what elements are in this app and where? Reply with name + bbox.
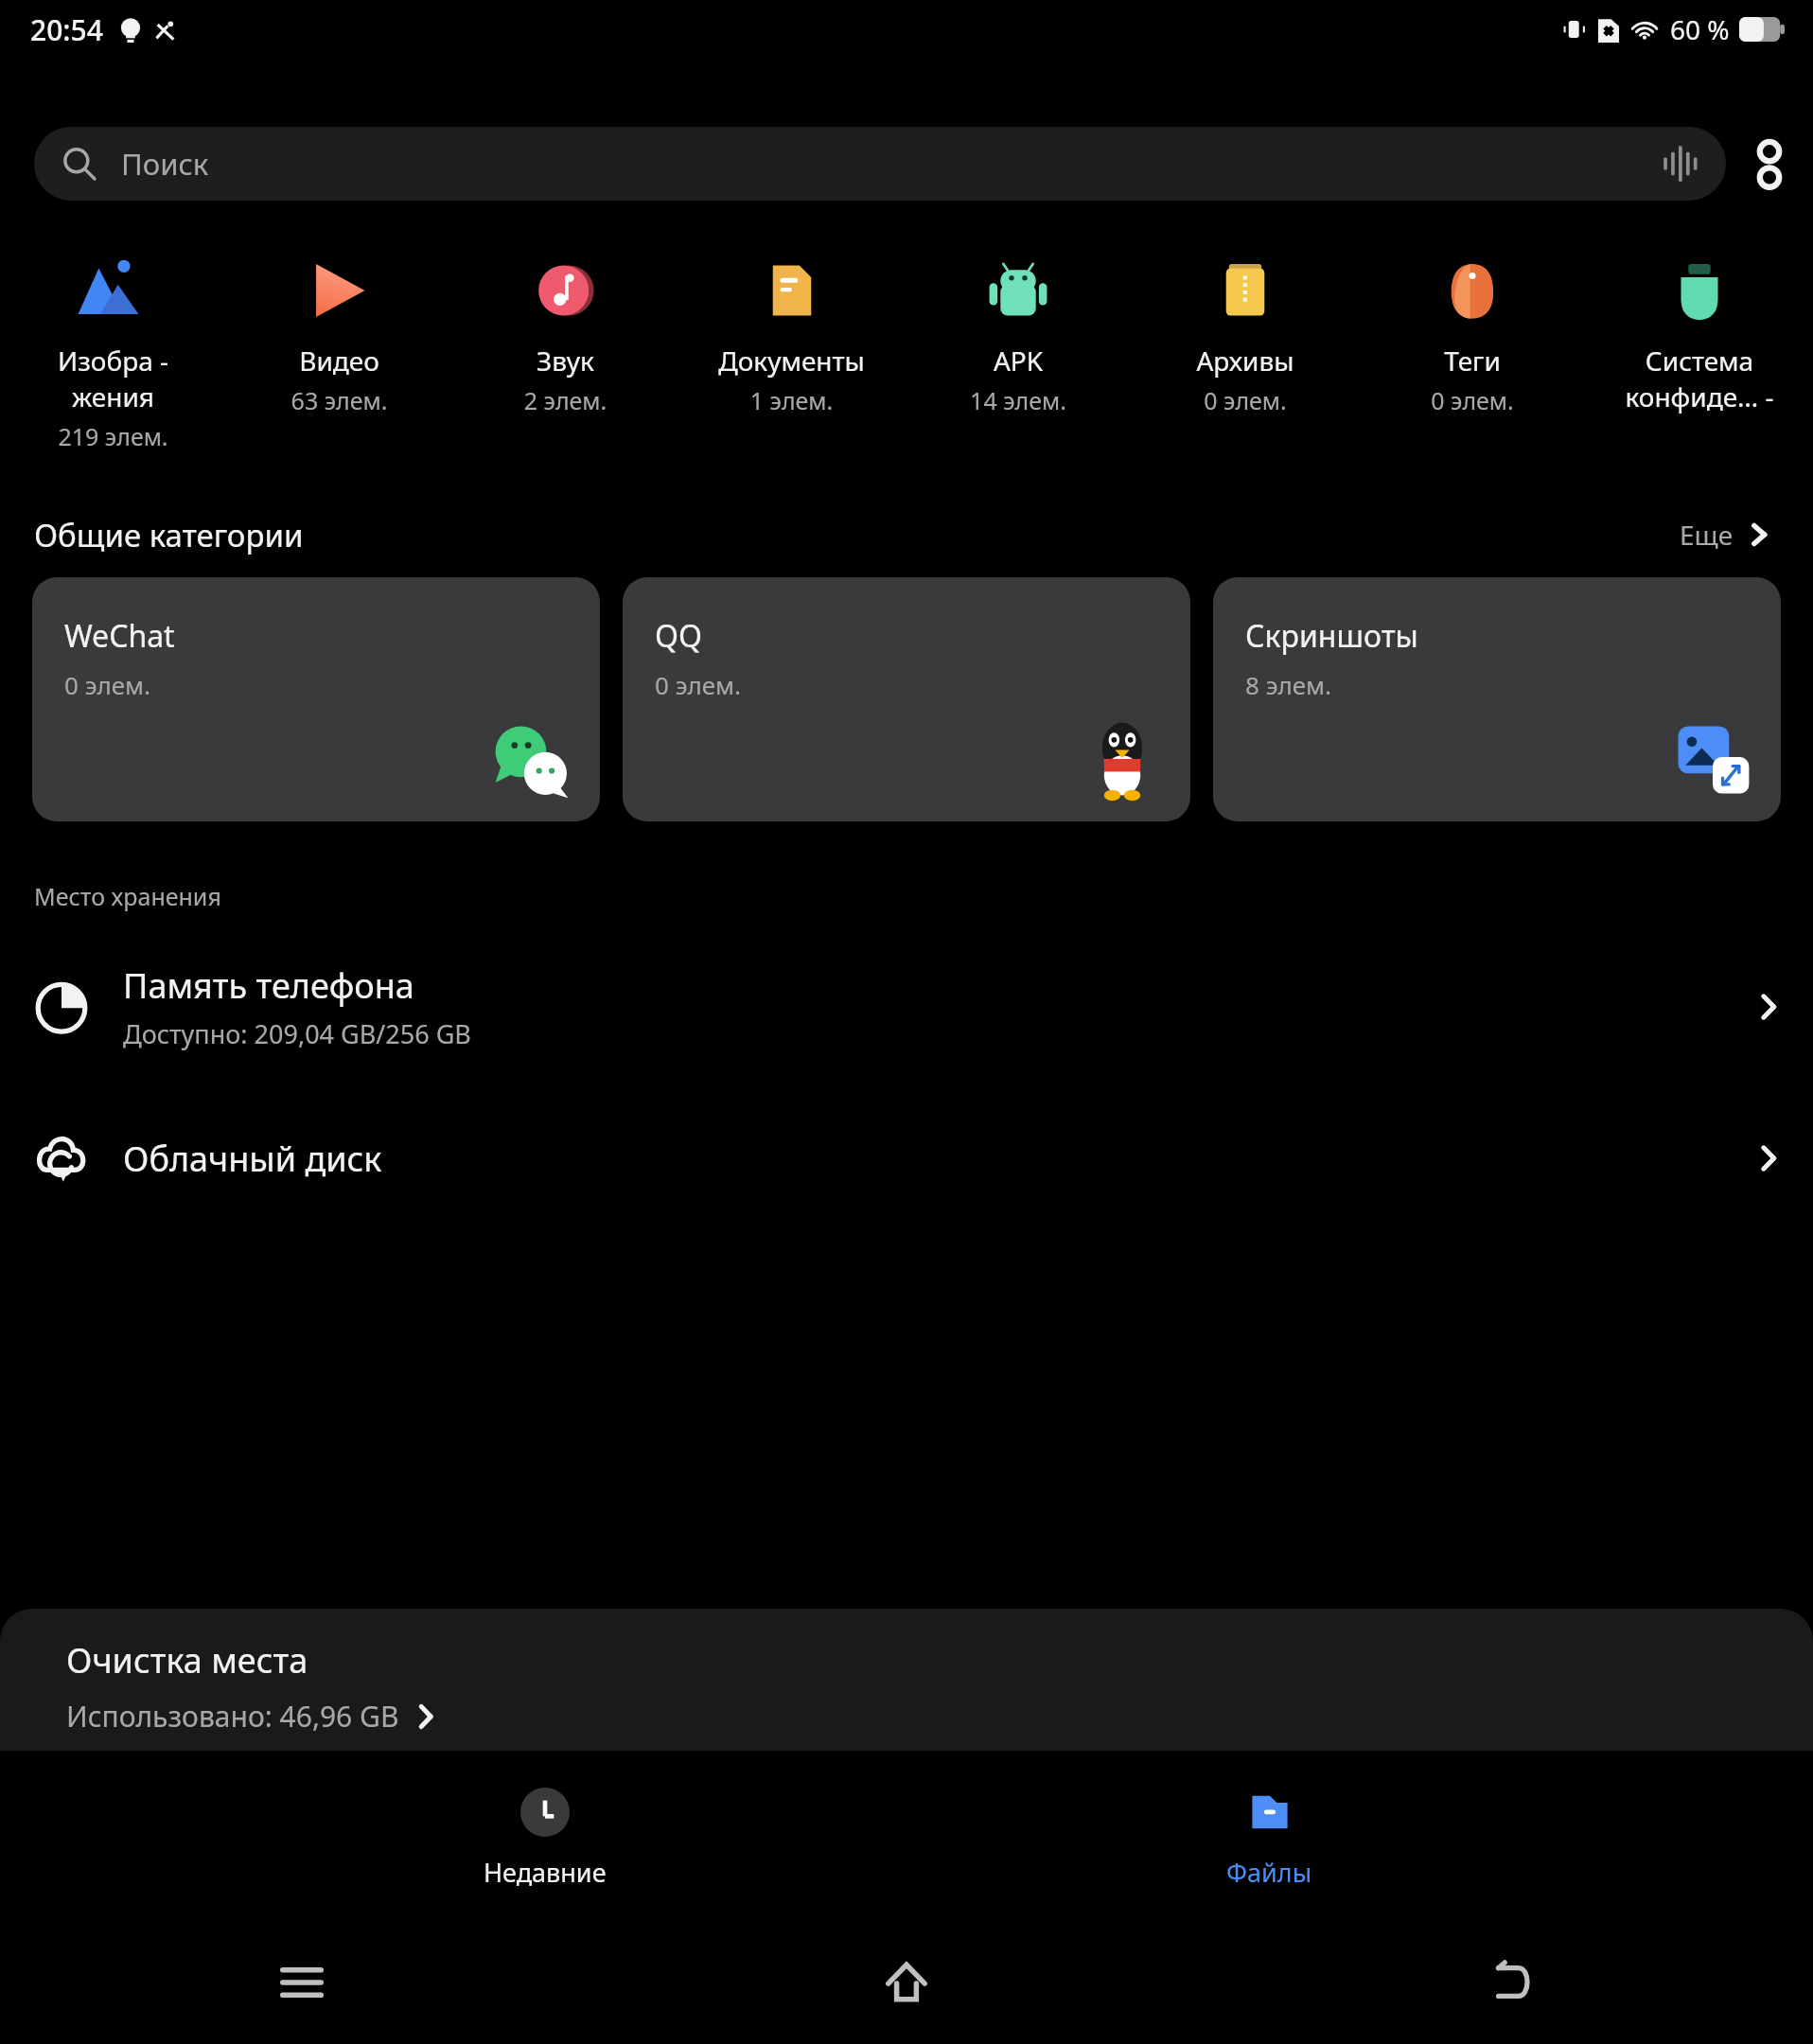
staticText: 1 элем. — [678, 384, 905, 416]
staticText: Архивы — [1132, 343, 1359, 379]
button[interactable]: APK — [905, 250, 1132, 420]
staticText: 0 элем. — [1359, 384, 1586, 416]
button[interactable]: Система конфиде… - — [1586, 250, 1813, 418]
button[interactable]: More options — [1726, 127, 1813, 201]
button[interactable]: Документы — [678, 250, 905, 420]
button[interactable]: Архивы — [1132, 250, 1359, 420]
button[interactable]: WeChat — [32, 577, 600, 821]
button[interactable]: QQ — [623, 577, 1190, 821]
button[interactable]: Изобра - жения — [0, 250, 226, 456]
staticText: Место хранения — [34, 880, 221, 912]
button[interactable]: Еще — [1672, 509, 1779, 560]
staticText: WeChat — [64, 615, 175, 657]
button[interactable]: Облачный диск — [0, 1103, 1813, 1213]
button[interactable]: Теги — [1359, 250, 1586, 420]
staticText: 2 элем. — [452, 384, 678, 416]
button[interactable]: Recents — [0, 1921, 604, 2044]
staticText: Память телефона — [123, 962, 414, 1009]
staticText: 0 элем. — [1132, 384, 1359, 416]
staticText: 0 элем. — [64, 668, 151, 701]
staticText: Система конфиде… - — [1586, 343, 1813, 414]
staticText: 14 элем. — [905, 384, 1132, 416]
button[interactable]: Поиск — [34, 127, 1726, 201]
staticText: Видео — [226, 343, 452, 379]
staticText: Еще — [1680, 517, 1734, 553]
staticText: APK — [905, 343, 1132, 379]
staticText: 63 элем. — [226, 384, 452, 416]
button[interactable]: Скриншоты — [1213, 577, 1781, 821]
staticText: Использовано: 46,96 GB — [66, 1697, 399, 1736]
staticText: Теги — [1359, 343, 1586, 379]
staticText: Файлы — [1226, 1855, 1312, 1890]
staticText: 8 элем. — [1245, 668, 1332, 701]
staticText: 0 элем. — [655, 668, 742, 701]
button[interactable]: Недавние — [363, 1751, 726, 1921]
button[interactable]: Home — [604, 1921, 1208, 2044]
staticText: 20:54 — [30, 10, 103, 49]
staticText: Общие категории — [34, 514, 304, 556]
button[interactable]: Очистка места — [0, 1609, 1813, 1798]
staticText: Изобра - жения — [0, 343, 226, 414]
staticText: Документы — [678, 343, 905, 379]
staticText: QQ — [655, 615, 702, 657]
staticText: 219 элем. — [0, 420, 226, 452]
staticText: Недавние — [484, 1855, 607, 1890]
staticText: 60 % — [1670, 11, 1730, 47]
button[interactable]: Видео — [226, 250, 452, 420]
button[interactable]: Back — [1208, 1921, 1813, 2044]
staticText: Облачный диск — [123, 1136, 382, 1182]
staticText: Звук — [452, 343, 678, 379]
staticText: Очистка места — [66, 1637, 308, 1683]
staticText: Поиск — [121, 144, 209, 184]
button[interactable]: Звук — [452, 250, 678, 420]
staticText: Доступно: 209,04 GB/256 GB — [123, 1016, 471, 1051]
staticText: Скриншоты — [1245, 615, 1418, 657]
button[interactable]: Память телефона — [0, 952, 1813, 1062]
button[interactable]: Файлы — [1088, 1751, 1451, 1921]
